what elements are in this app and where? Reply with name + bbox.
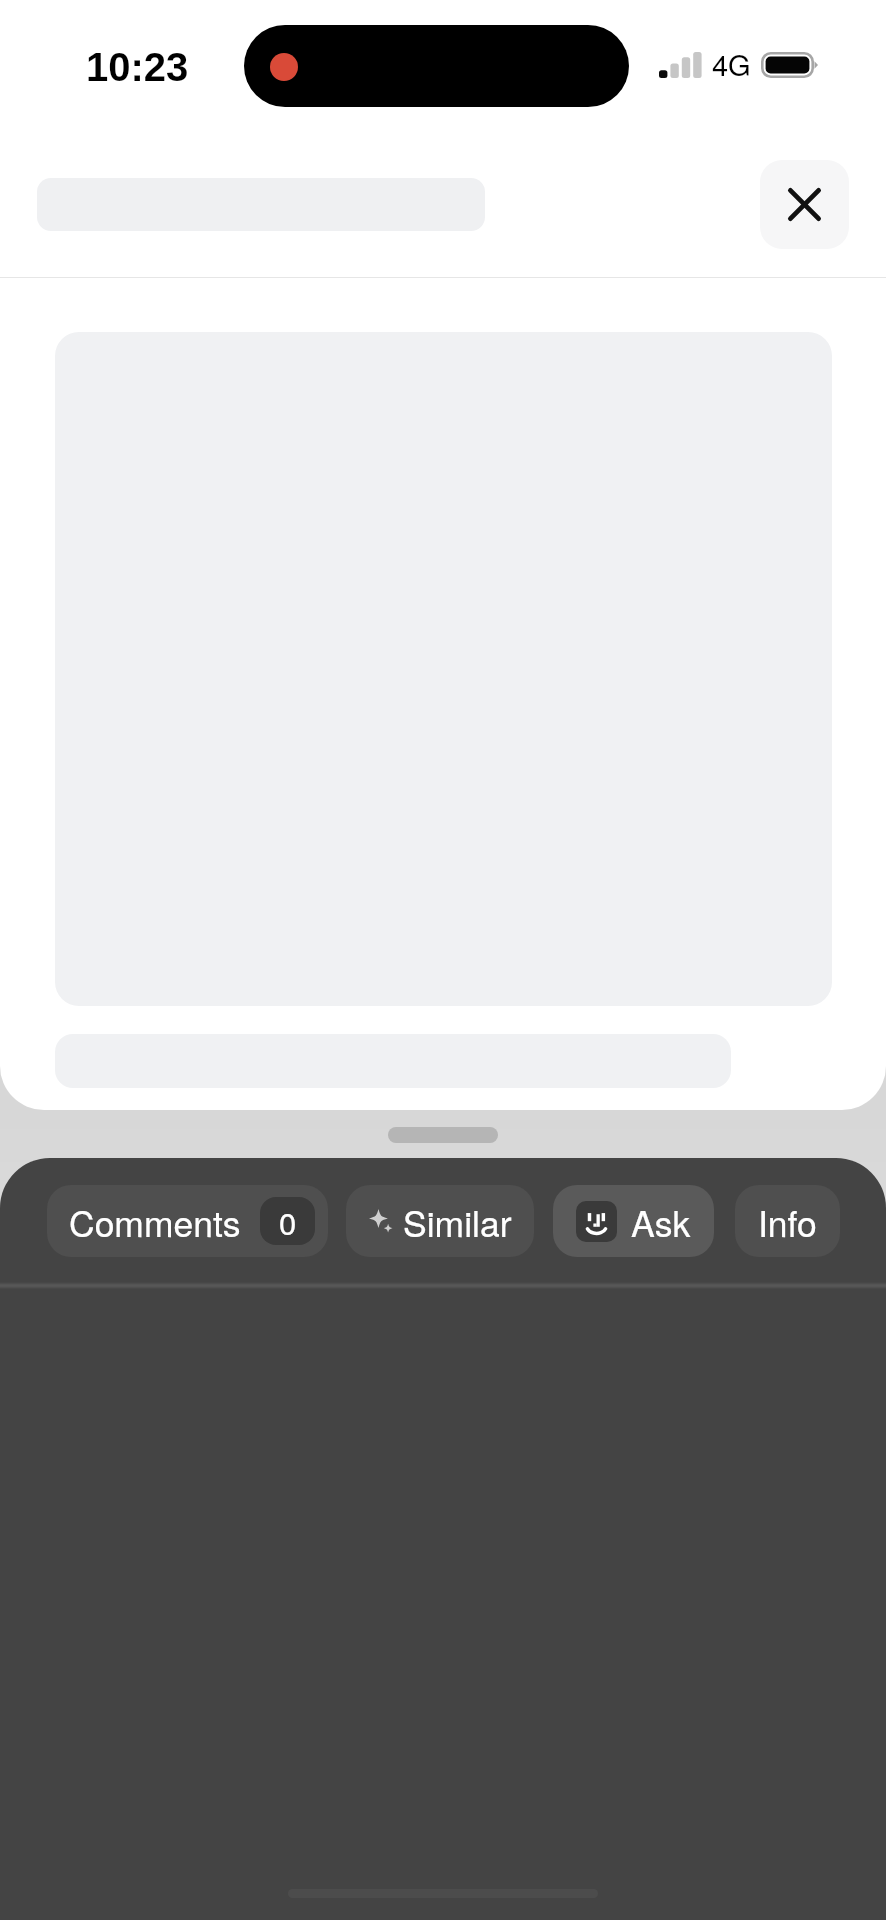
button[interactable]: Similar	[346, 1185, 534, 1257]
staticText: 10:23	[86, 45, 189, 90]
staticText: Similar	[403, 1196, 512, 1247]
button[interactable]: Info	[735, 1185, 840, 1257]
button[interactable]: Close	[760, 160, 849, 249]
button[interactable]: Comments	[47, 1185, 328, 1257]
staticText: 4G	[712, 43, 751, 85]
staticText: Comments	[69, 1196, 241, 1247]
button[interactable]: Ask	[553, 1185, 714, 1257]
staticText: Info	[758, 1196, 817, 1247]
staticText: 0	[279, 1199, 297, 1243]
staticText: Ask	[631, 1196, 691, 1247]
